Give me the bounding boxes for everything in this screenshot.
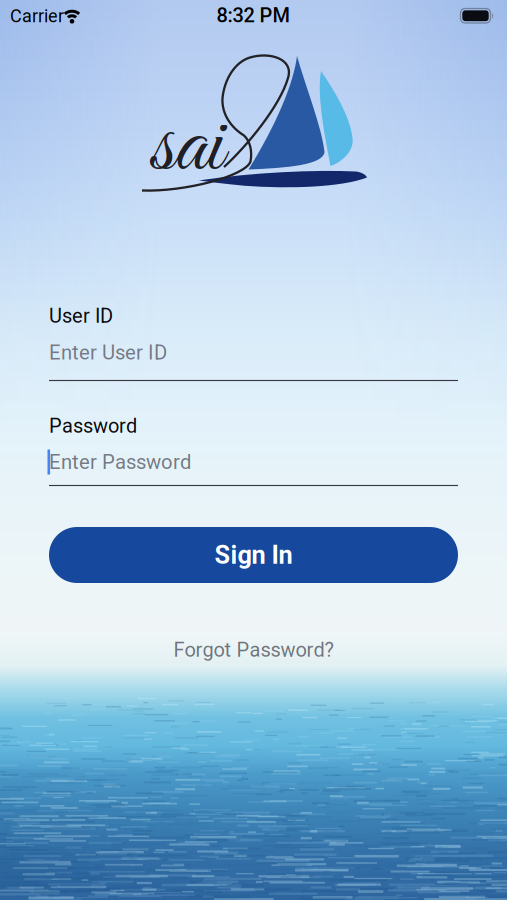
- staticText: 8:32 PM: [216, 4, 289, 27]
- staticText: Forgot Password?: [173, 638, 333, 662]
- staticText: Sign In: [214, 540, 292, 570]
- button[interactable]: Sign In: [49, 527, 458, 583]
- staticText: Password: [49, 414, 137, 438]
- staticText: sai: [151, 92, 223, 205]
- staticText: Enter Password: [49, 450, 191, 474]
- staticText: User ID: [49, 304, 113, 328]
- staticText: Carrier: [10, 5, 64, 27]
- staticText: Enter User ID: [49, 341, 167, 364]
- button[interactable]: User ID: [49, 335, 458, 381]
- button[interactable]: Password: [49, 440, 458, 486]
- button[interactable]: Forgot Password?: [173, 638, 333, 662]
